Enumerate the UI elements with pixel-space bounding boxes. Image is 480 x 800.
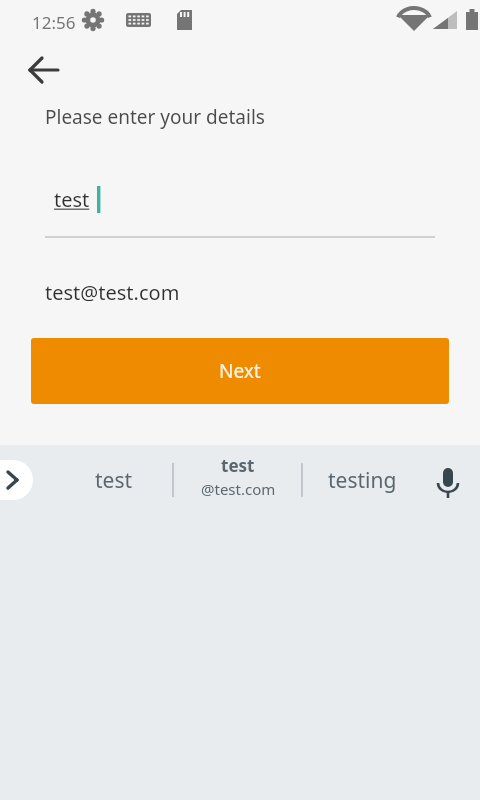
button[interactable]: Back [22,48,66,92]
button[interactable]: test [186,451,290,509]
staticText: test@test.com [45,279,180,301]
staticText: @test.com [201,479,276,499]
button[interactable] [312,451,412,509]
staticText: test [95,466,133,495]
button[interactable]: Voice input [426,458,470,502]
staticText: testing [328,466,397,495]
button[interactable]: Next [31,338,449,404]
staticText: Next [219,358,261,384]
button[interactable] [68,451,160,509]
button[interactable]: test [45,175,435,245]
button[interactable]: test@test.com [45,288,435,310]
staticText: 12:56 [32,11,76,34]
staticText: test [221,454,255,477]
button[interactable]: Expand suggestions [0,460,33,500]
staticText: Please enter your details [45,104,265,130]
staticText: test [54,186,90,213]
